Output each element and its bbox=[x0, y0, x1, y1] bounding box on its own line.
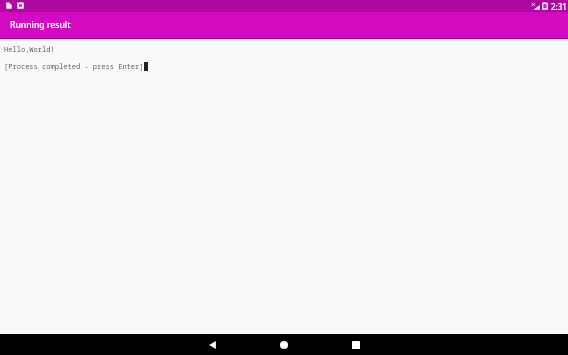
button[interactable]: Recents bbox=[336, 334, 376, 355]
button[interactable]: Home bbox=[264, 334, 304, 355]
button[interactable]: Back bbox=[192, 334, 232, 355]
staticText: [Process completed - press Enter] bbox=[4, 61, 144, 71]
staticText: Hello,World! bbox=[4, 44, 55, 54]
staticText: Running result bbox=[10, 19, 71, 31]
staticText: 2:31 bbox=[551, 1, 567, 12]
